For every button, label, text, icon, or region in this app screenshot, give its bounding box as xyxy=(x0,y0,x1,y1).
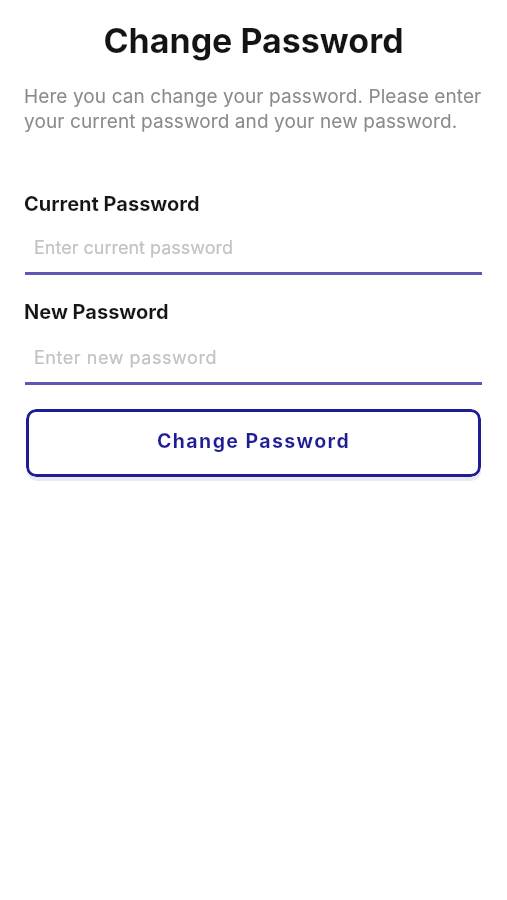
staticText: Change Password xyxy=(157,429,351,453)
staticText: Here you can change your password. Pleas… xyxy=(24,85,482,133)
button[interactable]: Enter new password xyxy=(25,342,482,385)
button[interactable]: Enter current password xyxy=(25,232,482,275)
staticText: Current Password xyxy=(24,192,200,216)
staticText: New Password xyxy=(24,300,169,324)
staticText: Enter current password xyxy=(34,237,234,259)
staticText: Enter new password xyxy=(34,347,218,369)
staticText: Change Password xyxy=(0,20,507,61)
button[interactable]: Change Password xyxy=(26,409,481,477)
